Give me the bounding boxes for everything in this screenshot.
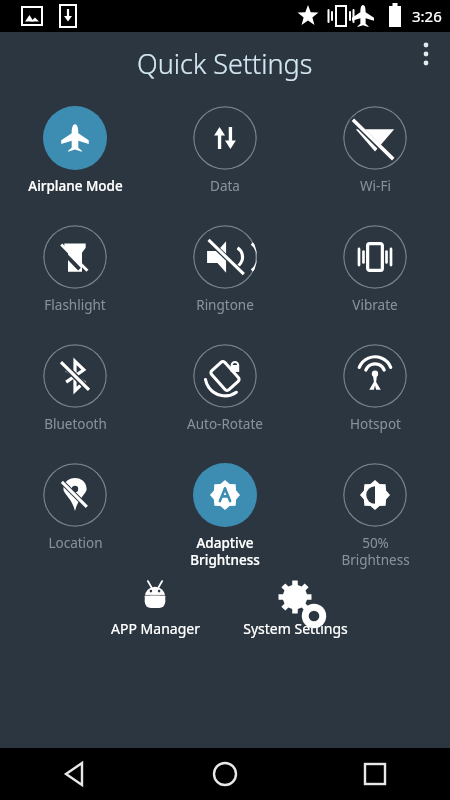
staticText: Adaptive Brightness [190,534,260,569]
button[interactable]: Data [150,94,300,213]
button[interactable]: Adaptive Brightness [150,451,300,570]
button[interactable]: More options [404,32,448,76]
staticText: Wi-Fi [360,177,391,195]
staticText: System Settings [243,619,348,638]
staticText: 3:26 [412,6,442,26]
staticText: Flashlight [44,296,106,314]
button[interactable]: Vibrate [300,213,450,332]
button[interactable]: Home [150,748,300,800]
staticText: Vibrate [352,296,398,314]
button[interactable]: Auto-Rotate [150,332,300,451]
button[interactable]: Wi-Fi [300,94,450,213]
staticText: Hotspot [350,415,401,433]
staticText: APP Manager [111,619,200,638]
staticText: Ringtone [196,296,254,314]
button[interactable]: Back [0,748,150,800]
button[interactable]: Recents [300,748,450,800]
button[interactable]: Bluetooth [0,332,150,451]
button[interactable]: 50% Brightness [300,451,450,570]
button[interactable]: Location [0,451,150,570]
button[interactable]: Ringtone [150,213,300,332]
button[interactable]: System Settings [225,578,365,638]
button[interactable]: Hotspot [300,332,450,451]
staticText: Data [210,177,240,195]
staticText: Location [48,534,103,552]
button[interactable]: Airplane Mode [0,94,150,213]
button[interactable]: Flashlight [0,213,150,332]
staticText: Bluetooth [44,415,107,433]
button[interactable]: APP Manager [85,578,225,638]
staticText: Auto-Rotate [187,415,263,433]
staticText: 50% Brightness [341,534,410,569]
staticText: Airplane Mode [28,177,123,195]
staticText: Quick Settings [137,45,313,82]
